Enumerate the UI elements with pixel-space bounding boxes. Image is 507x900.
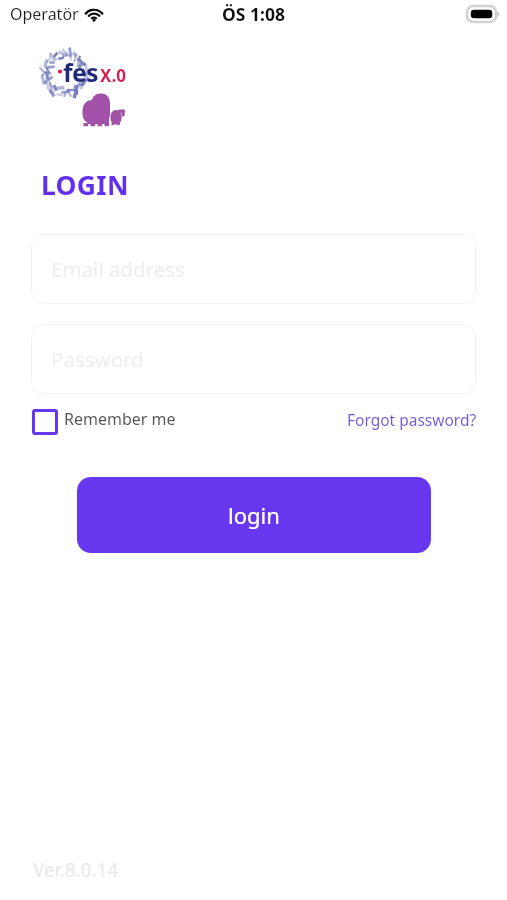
staticText: LOGIN <box>41 167 129 203</box>
staticText: fes <box>63 55 98 89</box>
button[interactable]: Remember me <box>32 409 176 435</box>
staticText: Remember me <box>64 408 176 430</box>
staticText: Password <box>51 345 144 373</box>
staticText: Operatör <box>10 3 79 25</box>
staticText: login <box>228 500 280 530</box>
staticText: ÖS 1:08 <box>222 2 285 26</box>
other: fes X.0 logo <box>33 46 130 138</box>
button[interactable]: login <box>77 477 431 553</box>
staticText: Forgot password? <box>347 409 477 430</box>
button[interactable]: Forgot password? <box>347 412 477 433</box>
staticText: Email address <box>51 255 185 283</box>
other: Wi-Fi signal <box>85 7 103 21</box>
staticText: X.0 <box>100 64 126 87</box>
button[interactable]: Email address <box>31 234 476 304</box>
other: Battery full <box>467 6 499 22</box>
staticText: Ver.8.0.14 <box>33 857 119 883</box>
